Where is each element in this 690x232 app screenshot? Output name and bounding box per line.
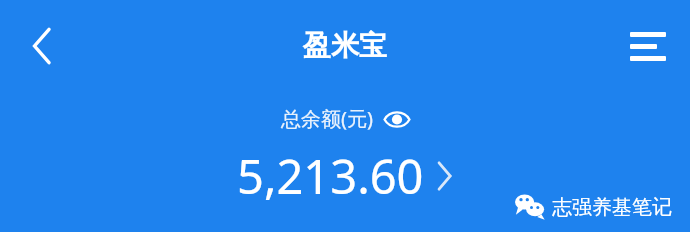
button[interactable]: 总余额(元) <box>279 105 412 132</box>
button[interactable]: 5,213.60 <box>237 144 453 208</box>
button[interactable]: Menu <box>620 18 676 74</box>
other: Toggle balance visibility <box>384 106 410 132</box>
staticText: 志强养基笔记 <box>552 195 672 220</box>
button[interactable]: Back <box>14 18 70 74</box>
staticText: 5,213.60 <box>237 144 424 208</box>
staticText: 盈米宝 <box>303 28 387 63</box>
staticText: 总余额(元) <box>281 105 373 132</box>
